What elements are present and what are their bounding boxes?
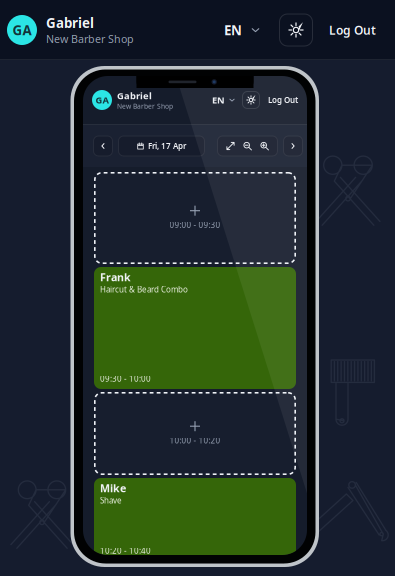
button[interactable]: Next day xyxy=(283,135,303,156)
staticText: Frank xyxy=(100,270,131,284)
button[interactable]: Previous day xyxy=(93,135,113,156)
staticText: Haircut & Beard Combo xyxy=(100,284,188,295)
staticText: GA xyxy=(12,21,31,39)
staticText: Fri, 17 Apr xyxy=(148,141,186,151)
staticText: Log Out xyxy=(329,22,376,38)
staticText: 09:00 - 09:30 xyxy=(169,220,220,230)
button[interactable]: 09:00 - 09:30 xyxy=(94,172,296,264)
button[interactable]: Frank xyxy=(94,267,296,389)
button[interactable]: 10:00 - 10:20 xyxy=(94,392,296,475)
staticText: 10:00 - 10:20 xyxy=(169,435,220,446)
staticText: New Barber Shop xyxy=(46,32,134,46)
staticText: 10:20 - 10:40 xyxy=(100,545,151,556)
button[interactable]: Toggle appearance xyxy=(279,13,313,46)
button[interactable]: Mike xyxy=(94,478,296,561)
staticText: New Barber Shop xyxy=(117,102,173,111)
button[interactable]: Fri, 17 Apr xyxy=(118,135,205,156)
staticText: EN xyxy=(224,21,242,39)
button[interactable]: GA xyxy=(0,0,134,60)
staticText: 09:30 - 10:00 xyxy=(100,373,151,384)
staticText: Shave xyxy=(100,495,122,506)
staticText: EN xyxy=(212,94,225,106)
staticText: Log Out xyxy=(268,95,298,105)
button[interactable]: Zoom controls xyxy=(217,135,278,156)
staticText: Gabriel xyxy=(46,14,94,32)
staticText: GA xyxy=(95,94,108,106)
staticText: Mike xyxy=(100,481,126,495)
button[interactable]: EN xyxy=(220,12,264,48)
button[interactable]: Log Out xyxy=(313,12,395,48)
staticText: Gabriel xyxy=(117,89,152,102)
